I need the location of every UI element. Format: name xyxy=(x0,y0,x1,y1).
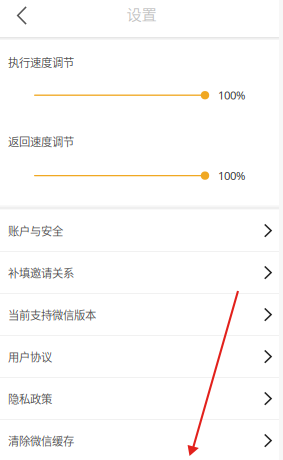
button[interactable]: 账户与安全 xyxy=(0,210,283,252)
staticText: 用户协议 xyxy=(8,348,52,365)
button[interactable]: 隐私政策 xyxy=(0,378,283,420)
staticText: 执行速度调节 xyxy=(8,54,74,70)
staticText: 当前支持微信版本 xyxy=(8,306,96,323)
staticText: 清除微信缓存 xyxy=(8,432,74,449)
staticText: 100% xyxy=(218,87,245,103)
button[interactable]: 用户协议 xyxy=(0,336,283,378)
staticText: 账户与安全 xyxy=(8,222,63,239)
staticText: 隐私政策 xyxy=(8,390,52,407)
button[interactable]: 补填邀请关系 xyxy=(0,252,283,294)
staticText: 补填邀请关系 xyxy=(8,264,74,281)
button[interactable]: Back xyxy=(0,0,46,30)
staticText: 100% xyxy=(218,168,245,183)
staticText: 设置 xyxy=(126,2,156,25)
button[interactable]: 清除微信缓存 xyxy=(0,420,283,460)
staticText: 返回速度调节 xyxy=(8,133,74,150)
button[interactable]: 当前支持微信版本 xyxy=(0,294,283,336)
